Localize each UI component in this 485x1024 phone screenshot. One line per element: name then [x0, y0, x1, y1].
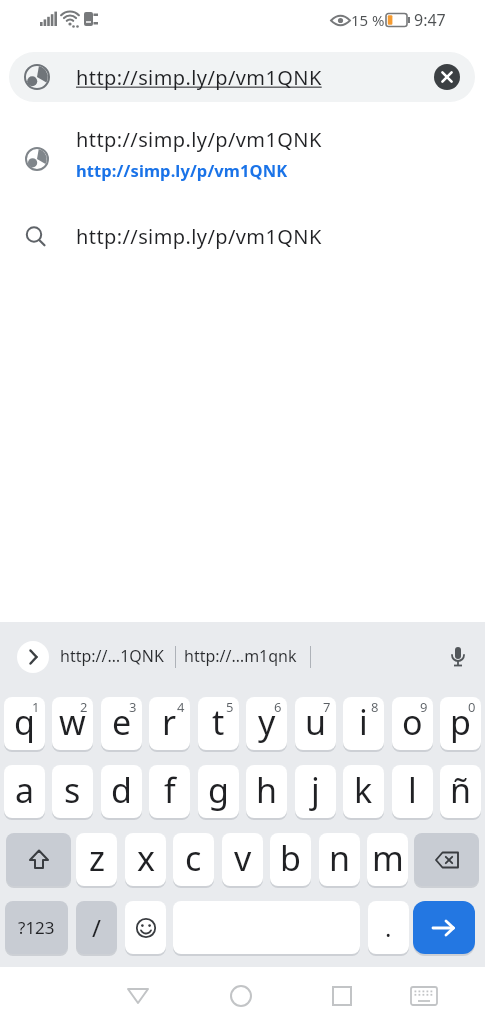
button[interactable]: t: [198, 697, 239, 750]
button[interactable]: o: [392, 697, 433, 750]
staticText: 2: [80, 698, 88, 716]
button[interactable]: r: [149, 697, 190, 750]
staticText: c: [185, 835, 202, 881]
staticText: http://simp.ly/p/vm1QNK: [76, 64, 322, 91]
staticText: 5: [226, 698, 234, 716]
staticText: y: [258, 699, 276, 745]
button[interactable]: [414, 833, 479, 886]
staticText: j: [311, 767, 320, 813]
button[interactable]: g: [198, 765, 239, 818]
button[interactable]: m: [367, 833, 408, 886]
button[interactable]: v: [222, 833, 263, 886]
staticText: 1: [32, 698, 40, 716]
staticText: k: [354, 767, 373, 813]
button[interactable]: ñ: [440, 765, 481, 818]
staticText: s: [64, 767, 81, 813]
staticText: http://…1QNK: [60, 645, 164, 667]
button[interactable]: a: [4, 765, 45, 818]
button[interactable]: f: [149, 765, 190, 818]
staticText: i: [359, 699, 368, 745]
button[interactable]: .: [368, 901, 409, 954]
button[interactable]: [434, 64, 460, 90]
staticText: 3: [129, 698, 137, 716]
button[interactable]: [120, 979, 156, 1013]
button[interactable]: [413, 901, 475, 954]
button[interactable]: [125, 901, 166, 954]
staticText: 9: [420, 698, 428, 716]
button[interactable]: http://simp.ly/p/vm1QNK: [0, 211, 485, 263]
staticText: .: [385, 911, 392, 944]
button[interactable]: s: [52, 765, 93, 818]
staticText: t: [212, 699, 225, 745]
button[interactable]: http://…1QNK: [60, 645, 164, 667]
button[interactable]: w: [52, 697, 93, 750]
staticText: 7: [323, 698, 331, 716]
staticText: 9:47: [414, 9, 446, 31]
button[interactable]: h: [246, 765, 287, 818]
button[interactable]: p: [440, 697, 481, 750]
staticText: http://simp.ly/p/vm1QNK: [76, 126, 322, 153]
button[interactable]: [17, 641, 49, 673]
button[interactable]: u: [295, 697, 336, 750]
button[interactable]: [324, 979, 360, 1013]
staticText: ?123: [18, 916, 55, 939]
staticText: 0: [468, 698, 476, 716]
button[interactable]: /: [76, 901, 117, 954]
staticText: 6: [274, 698, 282, 716]
button[interactable]: j: [295, 765, 336, 818]
staticText: d: [111, 767, 132, 813]
staticText: z: [89, 835, 105, 881]
staticText: http://…m1qnk: [184, 645, 297, 667]
staticText: ñ: [450, 767, 472, 813]
button[interactable]: [223, 979, 259, 1013]
staticText: http://simp.ly/p/vm1QNK: [76, 159, 288, 181]
button[interactable]: k: [343, 765, 384, 818]
button[interactable]: [6, 833, 71, 886]
staticText: q: [14, 699, 35, 745]
staticText: 8: [371, 698, 379, 716]
button[interactable]: http://simp.ly/p/vm1QNK: [9, 52, 475, 102]
button[interactable]: c: [173, 833, 214, 886]
staticText: b: [280, 835, 301, 881]
button[interactable]: i: [343, 697, 384, 750]
staticText: http://simp.ly/p/vm1QNK: [76, 223, 322, 250]
button[interactable]: b: [270, 833, 311, 886]
staticText: x: [137, 835, 155, 881]
button[interactable]: http://…m1qnk: [184, 645, 297, 667]
staticText: a: [15, 767, 35, 813]
button[interactable]: d: [101, 765, 142, 818]
staticText: e: [112, 699, 132, 745]
staticText: v: [234, 835, 252, 881]
button[interactable]: y: [246, 697, 287, 750]
button[interactable]: http://simp.ly/p/vm1QNK: [0, 118, 485, 202]
button[interactable]: e: [101, 697, 142, 750]
staticText: o: [402, 699, 423, 745]
button[interactable]: l: [392, 765, 433, 818]
staticText: /: [92, 911, 101, 944]
staticText: f: [164, 767, 176, 813]
button[interactable]: n: [319, 833, 360, 886]
staticText: r: [162, 699, 177, 745]
staticText: g: [208, 767, 229, 813]
staticText: 15 %: [351, 10, 385, 30]
staticText: m: [372, 835, 404, 881]
staticText: h: [256, 767, 278, 813]
button[interactable]: ?123: [5, 901, 68, 954]
button[interactable]: x: [125, 833, 166, 886]
button[interactable]: q: [4, 697, 45, 750]
staticText: u: [305, 699, 327, 745]
staticText: l: [408, 767, 417, 813]
button[interactable]: [444, 642, 472, 672]
button[interactable]: z: [76, 833, 117, 886]
staticText: n: [329, 835, 351, 881]
staticText: w: [59, 699, 86, 745]
button[interactable]: [406, 979, 442, 1013]
staticText: p: [450, 699, 471, 745]
staticText: 4: [177, 698, 185, 716]
